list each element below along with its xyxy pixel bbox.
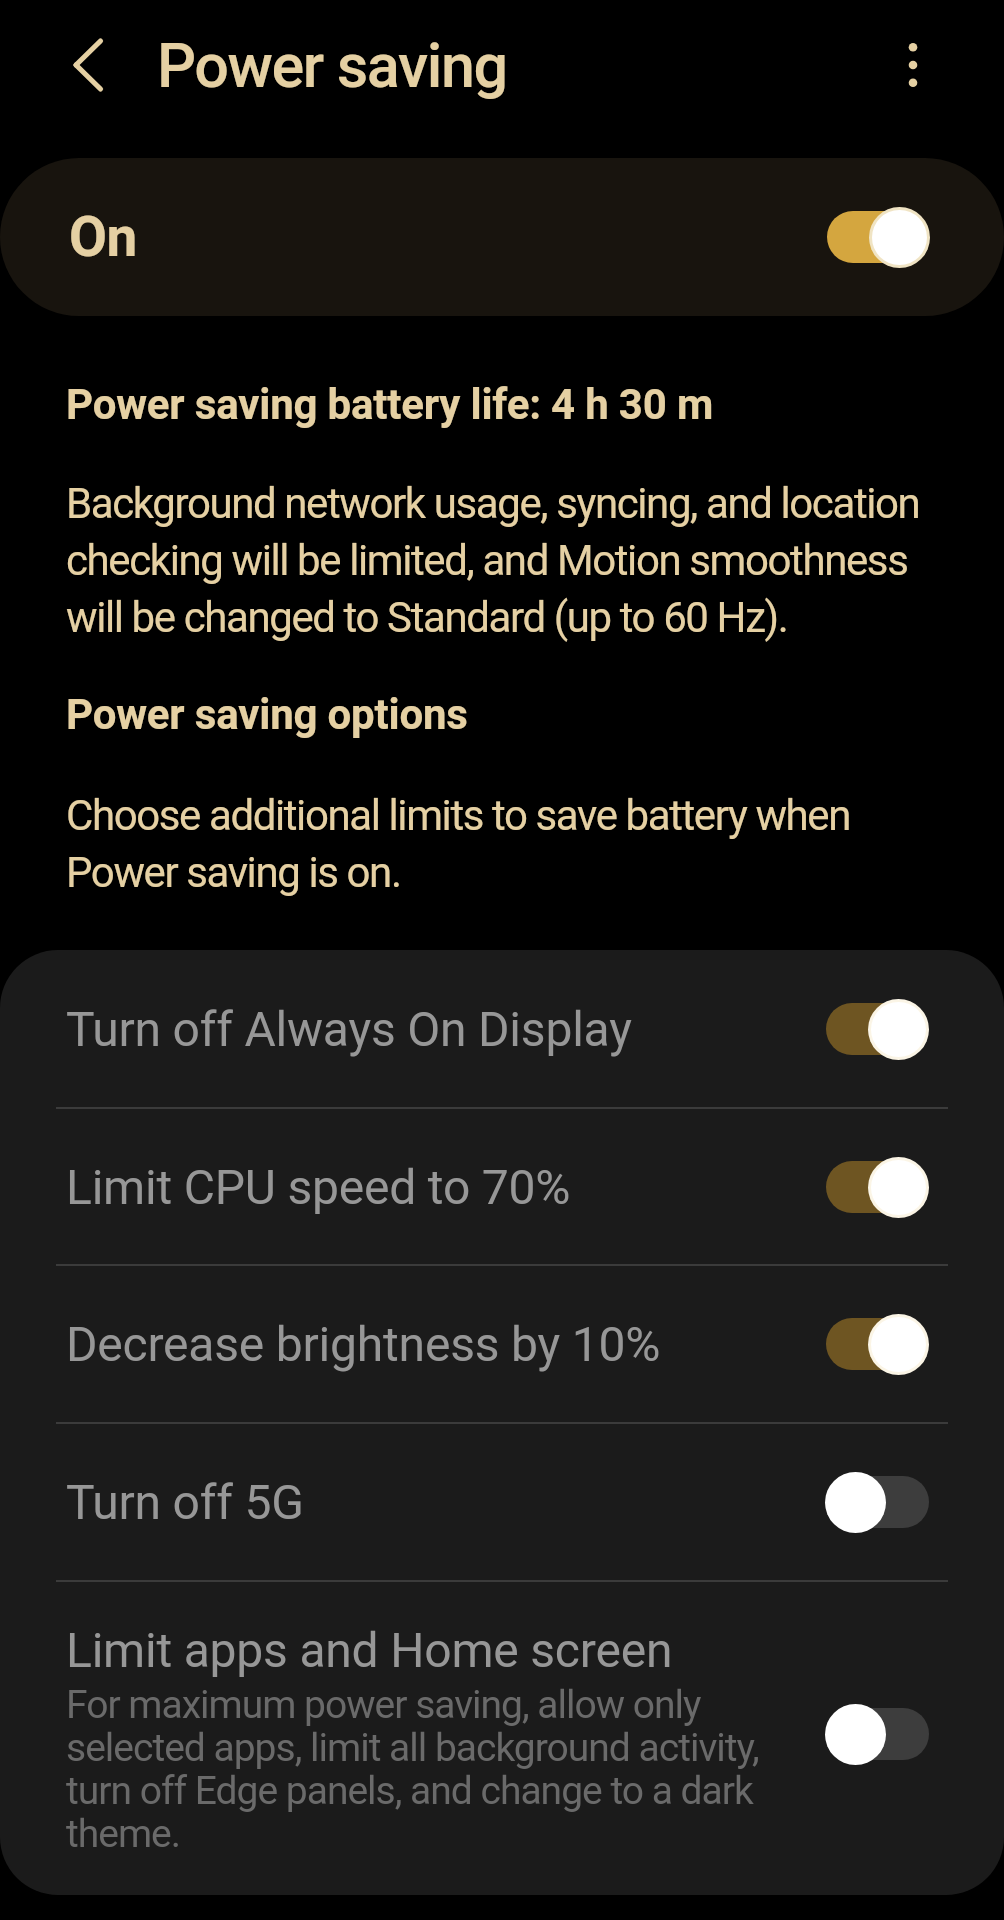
staticText: Background network usage, syncing, and l… — [66, 473, 964, 644]
button[interactable]: Back — [57, 34, 119, 96]
button[interactable]: More options — [873, 25, 953, 105]
staticText: Power saving battery life: 4 h 30 m — [66, 375, 714, 431]
staticText: Power saving — [157, 30, 507, 101]
button[interactable]: Limit apps and Home screen — [825, 1702, 929, 1766]
staticText: Turn off 5G — [66, 1473, 304, 1531]
staticText: On — [69, 205, 137, 269]
staticText: Choose additional limits to save battery… — [66, 785, 964, 899]
button[interactable]: Limit CPU speed to 70% — [0, 1109, 1004, 1264]
button[interactable]: Decrease brightness by 10% — [0, 1266, 1004, 1422]
staticText: Decrease brightness by 10% — [66, 1315, 661, 1373]
staticText: Turn off Always On Display — [66, 1000, 632, 1058]
button[interactable]: Turn off Always On Display — [0, 950, 1004, 1107]
button[interactable]: On — [0, 158, 1004, 316]
button[interactable]: Turn off Always On Display — [825, 997, 929, 1061]
button[interactable]: Decrease brightness by 10% — [825, 1312, 929, 1376]
button[interactable]: Power saving on — [826, 205, 930, 269]
staticText: For maximum power saving, allow only sel… — [66, 1684, 805, 1856]
button[interactable]: Limit CPU speed to 70% — [825, 1155, 929, 1219]
button[interactable]: Turn off 5G — [0, 1424, 1004, 1580]
button[interactable]: Turn off 5G — [825, 1470, 929, 1534]
button[interactable]: Limit apps and Home screen — [0, 1582, 1004, 1895]
staticText: Limit apps and Home screen — [66, 1621, 673, 1679]
staticText: Power saving options — [66, 685, 468, 741]
staticText: Limit CPU speed to 70% — [66, 1158, 571, 1216]
